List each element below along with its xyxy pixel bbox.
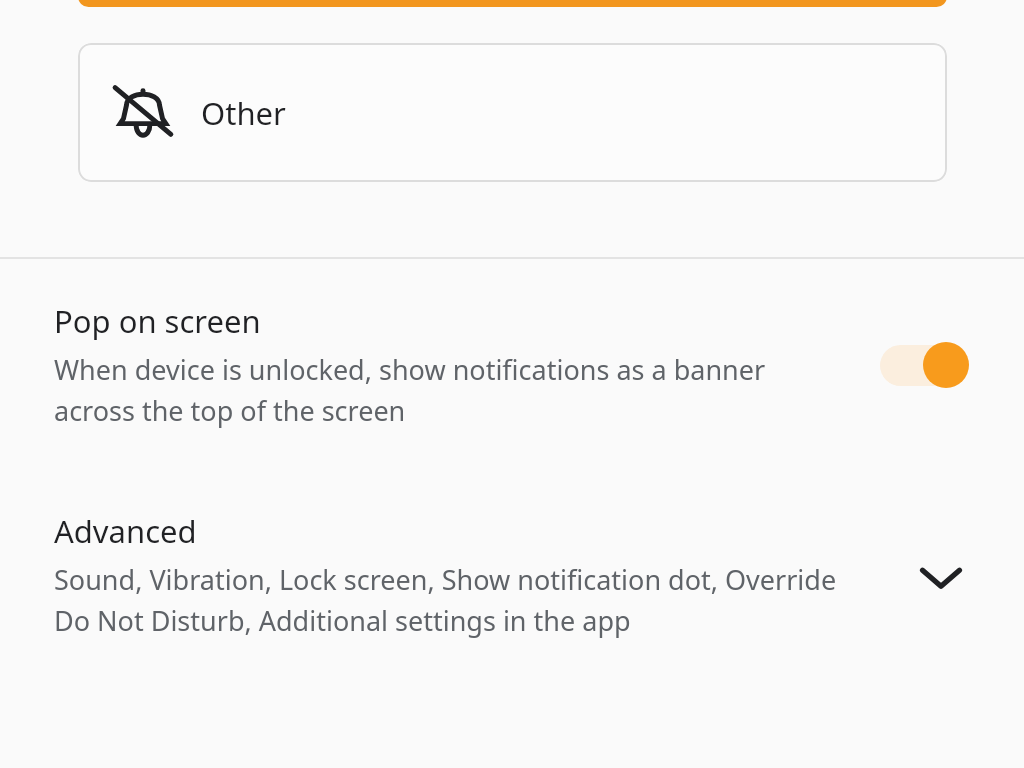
button[interactable]: Advanced — [0, 492, 1024, 702]
staticText: Other — [201, 92, 286, 134]
staticText: Pop on screen — [54, 300, 261, 342]
staticText: Sound, Vibration, Lock screen, Show noti… — [54, 561, 844, 639]
button[interactable]: Pop on screen — [0, 280, 1024, 460]
button[interactable]: Other — [78, 43, 947, 182]
staticText: Advanced — [54, 510, 197, 552]
button[interactable]: Expand advanced settings — [903, 540, 979, 616]
staticText: When device is unlocked, show notificati… — [54, 351, 844, 429]
button[interactable]: Pop on screen toggle, on — [876, 341, 972, 389]
button[interactable]: Category above — [78, 0, 947, 7]
